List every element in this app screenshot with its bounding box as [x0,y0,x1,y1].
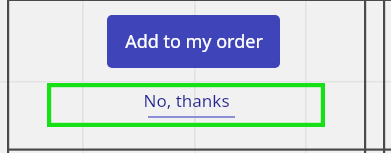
button[interactable]: No, thanks [51,87,321,123]
staticText: Add to my order [125,29,263,54]
button[interactable]: Add to my order [107,15,280,68]
staticText: No, thanks [143,89,230,112]
